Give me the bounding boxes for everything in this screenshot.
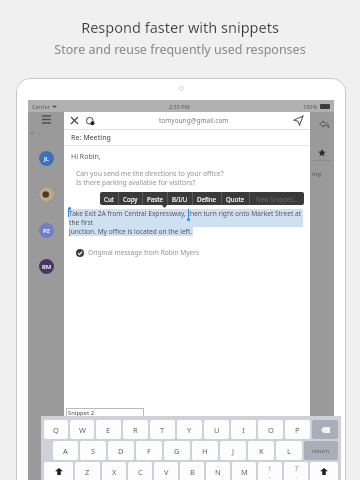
button[interactable]: Paste (143, 192, 167, 205)
staticText: 100% (303, 103, 318, 110)
button[interactable]: J (220, 441, 246, 460)
staticText: H (202, 446, 208, 456)
staticText: junction. My office is located on the le… (69, 227, 193, 236)
staticText: P (295, 425, 300, 435)
button[interactable]: PZ (28, 212, 64, 248)
staticText: Can you send me the directions to your o… (76, 169, 224, 178)
staticText: Cut (104, 195, 114, 203)
button[interactable]: V (154, 462, 178, 480)
button[interactable]: Send (292, 114, 305, 127)
staticText: Y (187, 425, 192, 435)
staticText: 2:35 PM (169, 103, 190, 110)
button[interactable]: Indent (282, 475, 291, 480)
staticText: RM (42, 263, 52, 271)
staticText: . (296, 473, 298, 480)
staticText: I (242, 425, 245, 435)
button[interactable]: O (258, 420, 283, 439)
staticText: Store and reuse frequently used response… (54, 41, 306, 58)
staticText: Take Exit 2A from Central Expressway, th… (69, 209, 303, 227)
staticText: U (214, 425, 220, 435)
button[interactable]: L (276, 441, 302, 460)
button[interactable]: Q (44, 420, 68, 439)
button[interactable]: C (128, 462, 152, 480)
button[interactable] (28, 176, 64, 212)
staticText: Original message from Robin Myers (88, 248, 200, 257)
button[interactable]: E (96, 420, 121, 439)
staticText: return (312, 447, 330, 455)
staticText: M (241, 467, 248, 477)
button[interactable]: ! (258, 462, 282, 480)
staticText: Is there parking available for visitors? (76, 178, 196, 187)
staticText: Copy (123, 195, 138, 203)
button[interactable]: RM (28, 248, 64, 284)
button[interactable]: X (102, 462, 126, 480)
staticText: ! (269, 464, 271, 473)
staticText: Q (53, 425, 59, 435)
staticText: Carrier (32, 103, 50, 110)
button[interactable]: Close (69, 115, 80, 126)
staticText: Z (85, 467, 90, 477)
button[interactable]: T (150, 420, 175, 439)
button[interactable]: B (180, 462, 204, 480)
button[interactable]: R (123, 420, 148, 439)
button[interactable]: A (53, 441, 78, 460)
staticText: C (138, 467, 143, 477)
button[interactable]: JL (28, 140, 64, 176)
button[interactable]: F (136, 441, 162, 460)
button[interactable]: Copy (119, 192, 142, 205)
button[interactable]: Original message from Robin Myers (76, 248, 200, 257)
button[interactable]: Backspace (312, 420, 338, 439)
button[interactable]: Cut (100, 192, 118, 205)
button[interactable]: Snippet 2 (68, 409, 142, 425)
button[interactable]: Star (315, 146, 329, 160)
button[interactable]: return (304, 441, 338, 460)
button[interactable]: Shift (44, 462, 73, 480)
staticText: Hi Robin, (71, 152, 101, 162)
button[interactable]: Z (75, 462, 100, 480)
staticText: , (269, 473, 271, 480)
staticText: J (232, 446, 235, 456)
staticText: A (63, 446, 68, 456)
staticText: PZ (43, 227, 51, 235)
staticText: Define (197, 195, 217, 203)
button[interactable]: New Snippet… (250, 192, 304, 205)
staticText: tomyoung@gmail.com (159, 116, 229, 125)
button[interactable]: ? (284, 462, 308, 480)
button[interactable]: G (164, 441, 190, 460)
staticText: B/I/U (172, 195, 188, 203)
staticText: Quote (226, 195, 245, 203)
button[interactable]: H (192, 441, 218, 460)
button[interactable]: W (70, 420, 94, 439)
staticText: T (160, 425, 165, 435)
staticText: ing (312, 170, 321, 178)
button[interactable]: N (206, 462, 230, 480)
staticText: Respond faster with snippets (81, 17, 279, 37)
button[interactable]: Attachments (84, 115, 96, 127)
staticText: R (133, 425, 138, 435)
button[interactable]: S (80, 441, 106, 460)
button[interactable]: K (248, 441, 274, 460)
button[interactable]: M (232, 462, 256, 480)
button[interactable]: Reply (316, 116, 332, 132)
staticText: Snippet 2 (68, 409, 94, 417)
button[interactable]: Shift (310, 462, 338, 480)
button[interactable]: P (285, 420, 310, 439)
staticText: ? (295, 464, 298, 473)
staticText: D (118, 446, 124, 456)
button[interactable]: Menu (28, 112, 64, 126)
staticText: V (164, 467, 169, 477)
button[interactable]: I (231, 420, 256, 439)
button[interactable]: D (108, 441, 134, 460)
staticText: B (190, 467, 195, 477)
staticText: W (79, 425, 86, 435)
staticText: G (174, 446, 180, 456)
button[interactable]: B/I/U (168, 192, 192, 205)
staticText: N (215, 467, 221, 477)
staticText: Take Exit 2A from Central… (68, 417, 141, 425)
button[interactable]: Y (177, 420, 202, 439)
button[interactable]: Split (295, 475, 304, 480)
staticText: F (147, 446, 151, 456)
button[interactable]: U (204, 420, 229, 439)
button[interactable]: Define (193, 192, 221, 205)
button[interactable]: Quote (222, 192, 249, 205)
